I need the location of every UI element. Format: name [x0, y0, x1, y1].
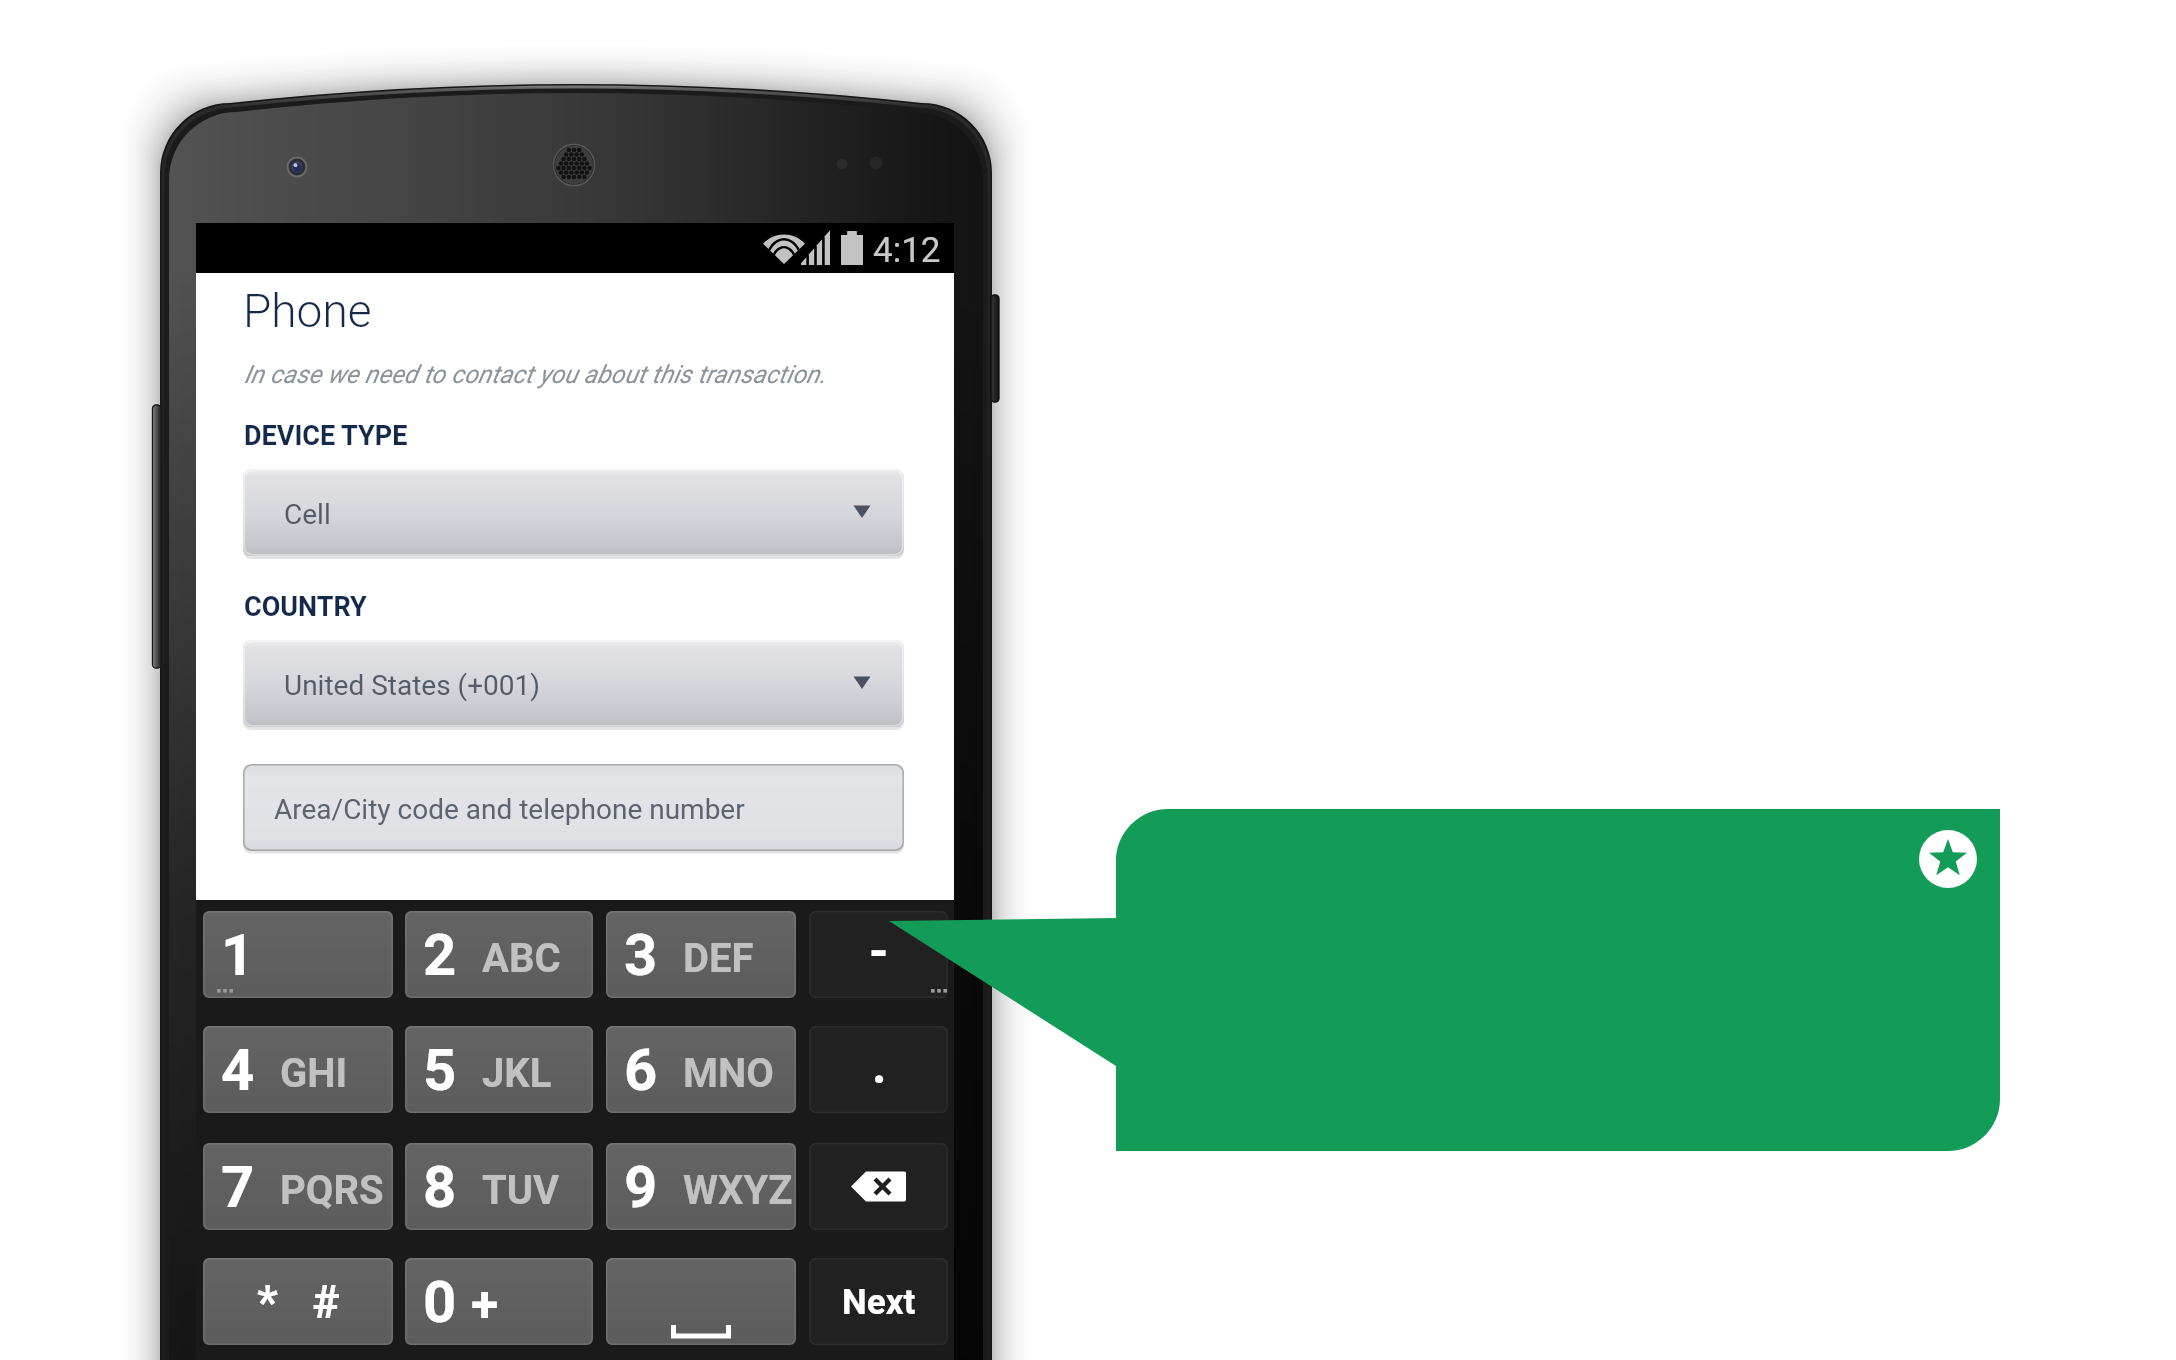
staticText: Area/City code and telephone number — [274, 793, 745, 826]
button[interactable]: Device type, Cell — [243, 469, 904, 556]
button[interactable]: 2 — [405, 911, 593, 998]
staticText: In case we need to contact you about thi… — [244, 360, 826, 389]
staticText: 7 — [221, 1153, 255, 1221]
button[interactable]: 1 — [203, 911, 393, 998]
staticText: GHI — [280, 1050, 348, 1097]
staticText: * # — [257, 1275, 340, 1329]
staticText: 3 — [624, 921, 658, 989]
button[interactable]: 3 — [606, 911, 796, 998]
button[interactable]: 6 — [606, 1026, 796, 1113]
staticText: PQRS — [280, 1167, 384, 1214]
staticText: 0 — [423, 1268, 457, 1336]
button[interactable]: Dash — [809, 911, 948, 998]
button[interactable]: Area/City code and telephone number — [243, 764, 904, 851]
staticText: - — [869, 922, 889, 981]
staticText: 2 — [423, 921, 457, 989]
staticText: 5 — [423, 1036, 457, 1104]
button[interactable]: Star and pound — [203, 1258, 393, 1345]
button[interactable]: 9 — [606, 1143, 796, 1230]
button[interactable]: Country, United States (+001) — [243, 640, 904, 727]
staticText: MNO — [683, 1050, 774, 1097]
staticText: Cell — [284, 498, 331, 531]
button[interactable]: Favourite — [1921, 831, 1977, 887]
staticText: United States (+001) — [284, 669, 541, 702]
staticText: 4:12 — [873, 230, 941, 271]
staticText: Next — [842, 1282, 916, 1323]
staticText: JKL — [482, 1050, 552, 1097]
staticText: DEF — [683, 935, 754, 982]
button[interactable]: Backspace — [809, 1143, 948, 1230]
button[interactable]: Next — [809, 1258, 948, 1345]
staticText: 9 — [624, 1153, 658, 1221]
button[interactable]: Period — [809, 1026, 948, 1113]
staticText: WXYZ — [683, 1167, 793, 1214]
staticText: . — [872, 1037, 887, 1096]
staticText: COUNTRY — [244, 591, 367, 623]
staticText: 8 — [423, 1153, 457, 1221]
staticText: + — [471, 1276, 499, 1335]
staticText: ABC — [482, 935, 561, 982]
button[interactable]: 0 plus — [405, 1258, 593, 1345]
staticText: 6 — [624, 1036, 658, 1104]
staticText: 1 — [221, 921, 255, 989]
button[interactable]: 7 — [203, 1143, 393, 1230]
staticText: Phone — [243, 284, 372, 338]
button[interactable]: 4 — [203, 1026, 393, 1113]
button[interactable]: Space — [606, 1258, 796, 1345]
staticText: DEVICE TYPE — [244, 420, 408, 452]
staticText: 4 — [221, 1036, 255, 1104]
button[interactable]: 8 — [405, 1143, 593, 1230]
button[interactable]: 5 — [405, 1026, 593, 1113]
staticText: TUV — [482, 1167, 560, 1214]
